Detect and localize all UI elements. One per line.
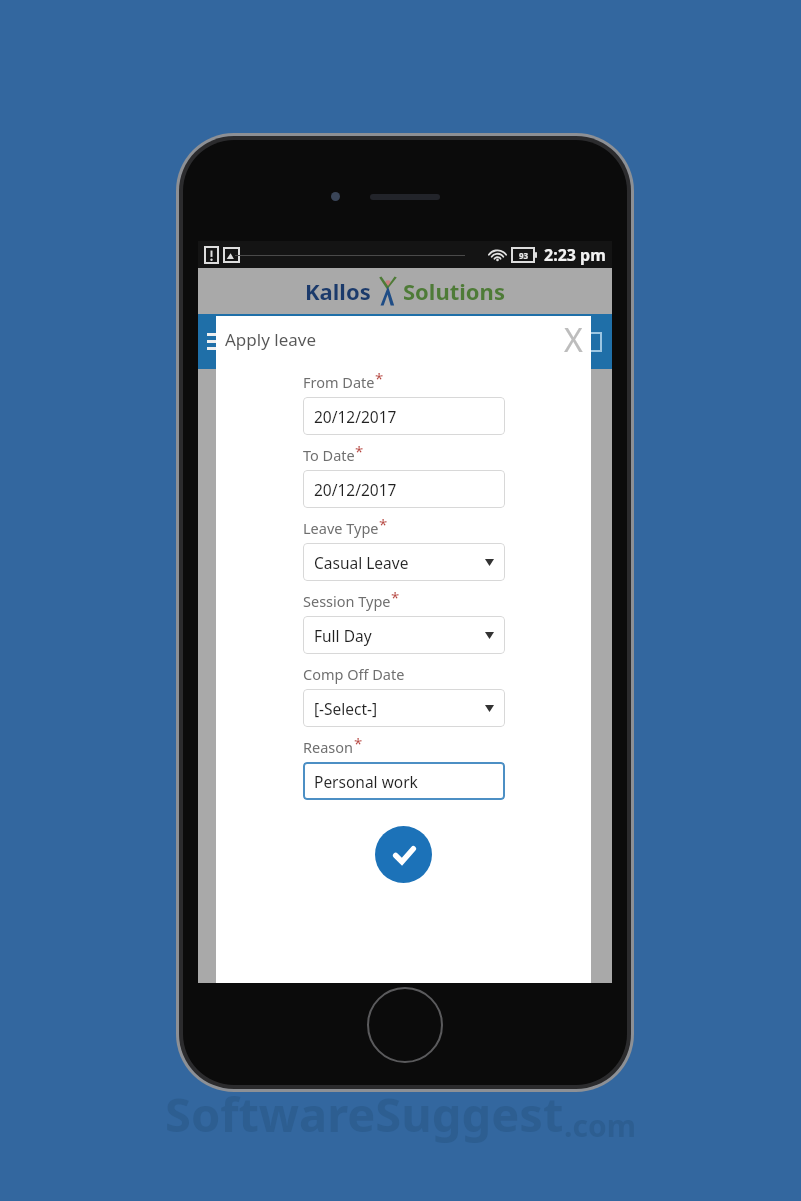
staticText: To Date xyxy=(303,445,355,465)
staticText: Full Day xyxy=(314,625,372,646)
button[interactable]: Casual Leave xyxy=(303,543,505,581)
staticText: 2:23 pm xyxy=(544,244,606,266)
staticText: Reason xyxy=(303,737,354,757)
staticText: From Date xyxy=(303,372,375,392)
button[interactable]: Submit xyxy=(375,826,432,883)
staticText: * xyxy=(379,514,388,534)
staticText: 20/12/2017 xyxy=(314,479,397,500)
button[interactable]: 20/12/2017 xyxy=(303,470,505,508)
button[interactable]: [-Select-] xyxy=(303,689,505,727)
staticText: Comp Off Date xyxy=(303,664,405,684)
staticText: * xyxy=(375,368,384,388)
staticText: .com xyxy=(564,1105,636,1146)
staticText: SoftwareSuggest xyxy=(165,1082,564,1146)
staticText: 20/12/2017 xyxy=(314,406,397,427)
staticText: * xyxy=(391,587,400,607)
staticText: Solutions xyxy=(403,276,505,306)
button[interactable]: 20/12/2017 xyxy=(303,397,505,435)
staticText: Session Type xyxy=(303,591,391,611)
staticText: * xyxy=(355,441,364,461)
staticText: X xyxy=(564,318,583,356)
staticText: Apply leave xyxy=(225,328,316,351)
staticText: * xyxy=(354,733,363,753)
button[interactable]: Full Day xyxy=(303,616,505,654)
staticText: Kallos xyxy=(305,276,371,306)
staticText: 93 xyxy=(519,250,529,261)
button[interactable]: Close xyxy=(554,318,592,356)
staticText: Leave Type xyxy=(303,518,379,538)
button[interactable]: Personal work xyxy=(303,762,505,800)
staticText: Casual Leave xyxy=(314,552,409,573)
staticText: [-Select-] xyxy=(314,698,378,719)
staticText: Personal work xyxy=(314,771,418,792)
